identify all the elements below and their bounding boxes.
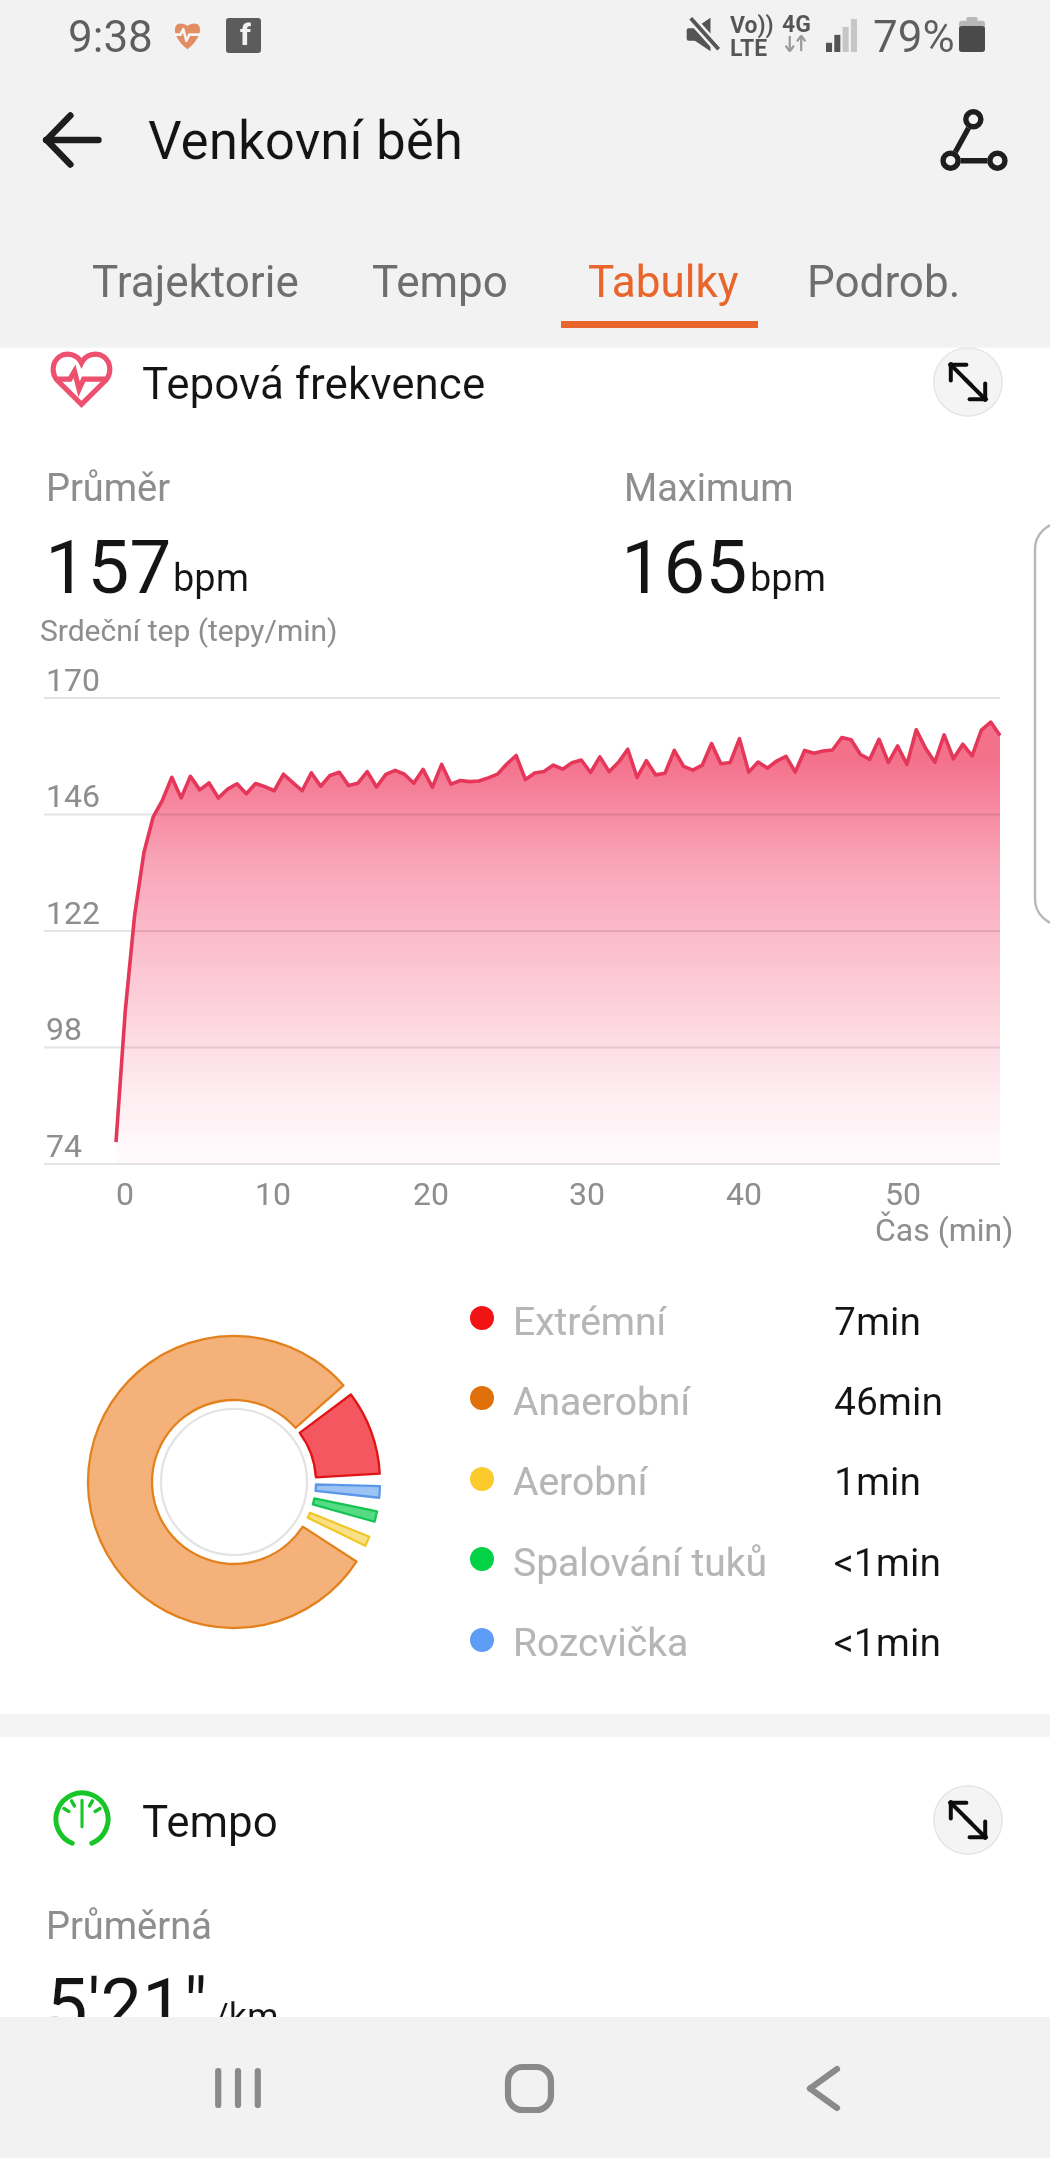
staticText: 4G bbox=[782, 11, 811, 38]
staticText: Tempo bbox=[142, 1796, 278, 1848]
staticText: Anaerobní bbox=[513, 1379, 691, 1425]
staticText: 9:38 bbox=[68, 11, 153, 63]
staticText: 5'21" bbox=[46, 1962, 208, 2049]
staticText: Extrémní bbox=[513, 1299, 667, 1345]
staticText: Rozcvička bbox=[513, 1620, 689, 1666]
staticText: 1min bbox=[834, 1459, 922, 1505]
button[interactable]: Expand heart rate chart bbox=[933, 347, 1003, 417]
button[interactable]: Recent apps bbox=[168, 2036, 308, 2140]
staticText: 74 bbox=[46, 1127, 82, 1165]
staticText: Srdeční tep (tepy/min) bbox=[40, 613, 338, 648]
staticText: <1min bbox=[834, 1540, 941, 1586]
staticText: Čas (min) bbox=[875, 1211, 1014, 1249]
staticText: Spalování tuků bbox=[513, 1540, 767, 1586]
staticText: 165 bbox=[621, 523, 748, 611]
button[interactable]: Share bbox=[928, 94, 1020, 186]
button[interactable]: Expand tempo chart bbox=[933, 1785, 1003, 1855]
staticText: Tepová frekvence bbox=[142, 358, 486, 410]
staticText: bpm bbox=[750, 556, 826, 601]
button[interactable]: Podrob. bbox=[789, 206, 979, 346]
staticText: Trajektorie bbox=[92, 256, 299, 308]
button[interactable]: Back bbox=[753, 2036, 893, 2140]
staticText: 10 bbox=[255, 1175, 291, 1213]
staticText: 122 bbox=[46, 894, 100, 932]
staticText: 30 bbox=[569, 1175, 605, 1213]
staticText: Aerobní bbox=[513, 1459, 648, 1505]
staticText: 20 bbox=[413, 1175, 449, 1213]
button[interactable]: Trajektorie bbox=[73, 206, 317, 346]
staticText: Tempo bbox=[372, 256, 508, 308]
staticText: Maximum bbox=[624, 466, 794, 511]
staticText: 98 bbox=[46, 1010, 82, 1048]
staticText: 157 bbox=[45, 523, 172, 611]
button[interactable]: Home bbox=[459, 2036, 599, 2140]
staticText: Tabulky bbox=[588, 256, 739, 308]
staticText: f bbox=[240, 17, 251, 52]
button[interactable]: Tabulky bbox=[563, 206, 763, 346]
staticText: 79% bbox=[873, 11, 955, 63]
staticText: Podrob. bbox=[807, 256, 961, 308]
staticText: 0 bbox=[116, 1175, 134, 1213]
staticText: 40 bbox=[726, 1175, 762, 1213]
staticText: bpm bbox=[173, 556, 249, 601]
staticText: LTE bbox=[730, 35, 768, 62]
staticText: 50 bbox=[885, 1175, 921, 1213]
staticText: Průměr bbox=[46, 466, 171, 511]
staticText: Vo)) bbox=[730, 12, 774, 39]
staticText: <1min bbox=[834, 1620, 941, 1666]
staticText: 146 bbox=[46, 777, 100, 815]
staticText: Venkovní běh bbox=[148, 110, 463, 172]
staticText: Průměrná bbox=[46, 1904, 212, 1949]
staticText: 170 bbox=[46, 661, 100, 699]
button[interactable]: Back bbox=[26, 94, 118, 186]
button[interactable]: Tempo bbox=[345, 206, 535, 346]
staticText: /km bbox=[214, 1996, 279, 2038]
staticText: 7min bbox=[834, 1299, 922, 1345]
staticText: 46min bbox=[834, 1379, 944, 1425]
